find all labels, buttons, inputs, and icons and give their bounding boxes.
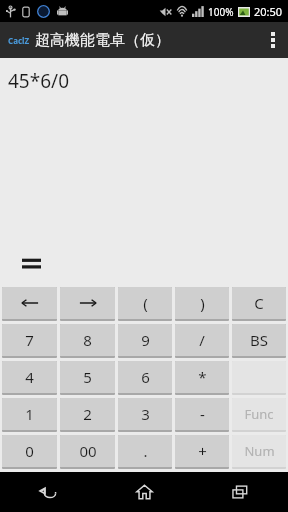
staticText: 100% [208, 5, 234, 19]
button[interactable]: ) [175, 287, 229, 319]
button[interactable]: 6 [118, 361, 172, 393]
staticText: 1 [25, 404, 34, 424]
staticText: 2 [83, 404, 92, 424]
staticText: 3 [141, 404, 150, 424]
button[interactable]: * [175, 361, 229, 393]
staticText: . [143, 441, 148, 461]
staticText: ) [200, 293, 205, 313]
staticText: 超高機能電卓（仮） [35, 31, 170, 50]
staticText: 8 [83, 330, 92, 350]
button[interactable]: BS [232, 324, 286, 356]
staticText: CaclZ [8, 35, 30, 46]
staticText: 45*6/0 [8, 68, 70, 94]
staticText: 20:50 [254, 4, 283, 19]
button[interactable]: / [175, 324, 229, 356]
staticText: - [200, 404, 205, 424]
staticText: 9 [141, 330, 150, 350]
button[interactable]: 00 [60, 435, 115, 467]
button[interactable]: 8 [60, 324, 115, 356]
button[interactable]: - [175, 398, 229, 430]
button[interactable]: C [232, 287, 286, 319]
button[interactable]: Recent apps [192, 472, 288, 512]
staticText: 0 [25, 441, 34, 461]
staticText: BS [250, 330, 268, 350]
button[interactable]: Home [96, 472, 192, 512]
button[interactable]: 7 [2, 324, 57, 356]
button[interactable]: 2 [60, 398, 115, 430]
staticText: + [198, 441, 207, 461]
button[interactable]: ( [118, 287, 172, 319]
staticText: Num [244, 442, 275, 460]
button[interactable]: Func [232, 398, 286, 430]
staticText: * [198, 367, 207, 387]
staticText: 6 [141, 367, 150, 387]
staticText: 00 [79, 441, 97, 461]
button[interactable]: Move cursor left [2, 287, 57, 319]
button[interactable]: . [118, 435, 172, 467]
staticText: 5 [83, 367, 92, 387]
button[interactable]: + [175, 435, 229, 467]
button[interactable]: Back [0, 472, 96, 512]
staticText: / [199, 330, 205, 350]
button[interactable]: More options [258, 22, 288, 58]
button[interactable]: 1 [2, 398, 57, 430]
staticText: 7 [25, 330, 34, 350]
button[interactable]: 3 [118, 398, 172, 430]
button[interactable]: Move cursor right [60, 287, 115, 319]
button[interactable]: 4 [2, 361, 57, 393]
button[interactable]: 9 [118, 324, 172, 356]
button[interactable]: Num [232, 435, 286, 467]
staticText: ( [143, 293, 148, 313]
staticText: Func [244, 405, 274, 423]
staticText: 4 [25, 367, 34, 387]
button[interactable]: 5 [60, 361, 115, 393]
staticText: C [254, 293, 264, 313]
button[interactable]: 0 [2, 435, 57, 467]
